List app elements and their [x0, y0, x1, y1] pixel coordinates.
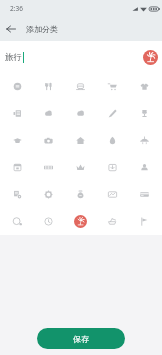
button[interactable]: Category icon 15 [128, 127, 160, 154]
button[interactable]: Category icon 17 [33, 154, 64, 181]
button[interactable]: Category icon 30 [128, 208, 160, 235]
button[interactable]: Category icon 2 [33, 73, 64, 100]
button[interactable]: Category icon 3 [64, 73, 96, 100]
button[interactable]: Category icon 12 [33, 127, 64, 154]
button[interactable]: Category icon 6 [2, 100, 33, 127]
staticText: 2:36 [10, 4, 23, 13]
button[interactable]: Category icon 26 [2, 208, 33, 235]
staticText: 保存 [73, 334, 89, 344]
button[interactable]: Category icon 8 [64, 100, 96, 127]
button[interactable]: Category icon 9 [96, 100, 128, 127]
button[interactable]: Category icon 18 [64, 154, 96, 181]
staticText: 旅行 [5, 52, 22, 63]
button[interactable]: 保存 [37, 328, 125, 349]
button[interactable]: Category icon 20 [128, 154, 160, 181]
button[interactable]: Selected category icon [143, 50, 158, 65]
button[interactable]: Category icon 10 [128, 100, 160, 127]
button[interactable]: Category icon 7 [33, 100, 64, 127]
button[interactable]: Category icon 24 [96, 181, 128, 208]
button[interactable]: Category icon 1 [2, 73, 33, 100]
button[interactable]: Category icon 19 [96, 154, 128, 181]
button[interactable]: Category icon 11 [2, 127, 33, 154]
button[interactable]: Category icon 23 [64, 181, 96, 208]
button[interactable]: Category icon 27 [33, 208, 64, 235]
button[interactable]: Category icon 25 [128, 181, 160, 208]
button[interactable]: Category icon 5 [128, 73, 160, 100]
button[interactable]: Category icon 4 [96, 73, 128, 100]
button[interactable]: Category icon 13 [64, 127, 96, 154]
button[interactable]: Category icon 22 [33, 181, 64, 208]
button[interactable]: Category icon 16 [2, 154, 33, 181]
button[interactable]: Category icon 14 [96, 127, 128, 154]
button[interactable]: Back [0, 18, 21, 39]
staticText: 添加分类 [26, 24, 58, 34]
button[interactable]: Category icon 29 [96, 208, 128, 235]
button[interactable]: Category icon 28 [64, 208, 96, 235]
button[interactable]: Category icon 21 [2, 181, 33, 208]
